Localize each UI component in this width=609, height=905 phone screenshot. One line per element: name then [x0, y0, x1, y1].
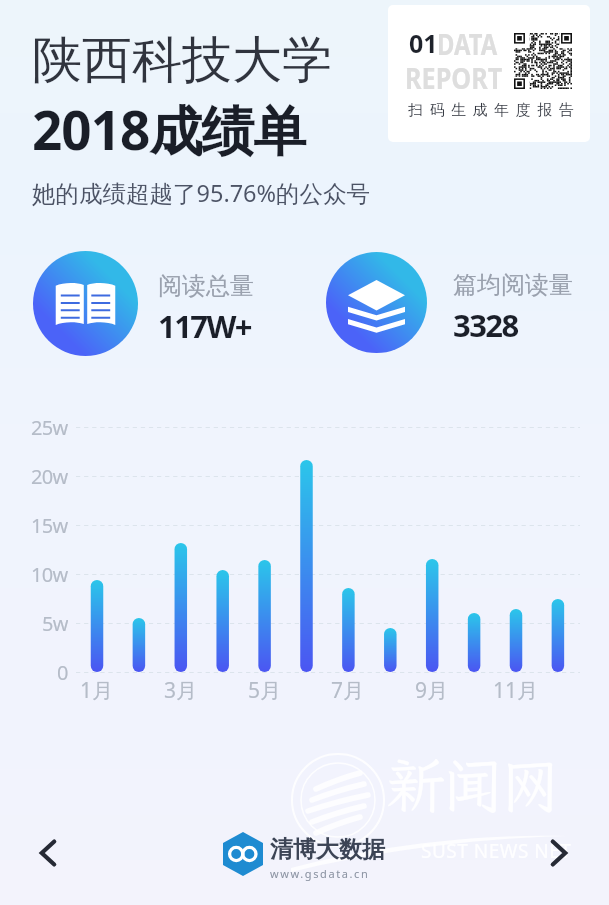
- staticText: 5月: [248, 676, 282, 702]
- staticText: 0: [57, 659, 68, 685]
- staticText: 5w: [42, 610, 68, 636]
- staticText: 扫码生成年度报告: [405, 101, 577, 120]
- staticText: 2018成绩单: [32, 93, 306, 165]
- staticText: 3月: [164, 676, 198, 702]
- button[interactable]: Next page: [538, 832, 580, 874]
- staticText: 陕西科技大学: [32, 29, 332, 92]
- staticText: www.gsdata.cn: [270, 866, 370, 881]
- staticText: 25w: [31, 414, 68, 440]
- button[interactable]: Previous page: [27, 832, 69, 874]
- staticText: 清博大数据: [270, 835, 385, 864]
- staticText: 11月: [493, 676, 539, 702]
- staticText: 篇均阅读量: [453, 270, 573, 300]
- staticText: 10w: [31, 561, 68, 587]
- staticText: 阅读总量: [158, 271, 254, 301]
- staticText: 20w: [31, 463, 68, 489]
- staticText: 她的成绩超越了95.76%的公众号: [32, 177, 371, 209]
- staticText: 新闻网: [386, 745, 557, 824]
- staticText: 01: [409, 26, 438, 60]
- staticText: SUST NEWS NET: [421, 838, 572, 864]
- staticText: DATA: [437, 25, 497, 63]
- staticText: 15w: [31, 512, 68, 538]
- staticText: 1月: [80, 676, 114, 702]
- staticText: 9月: [415, 676, 449, 702]
- button[interactable]: 01: [388, 5, 590, 142]
- staticText: 3328: [453, 304, 518, 346]
- staticText: REPORT: [405, 59, 503, 97]
- staticText: 117W+: [158, 305, 251, 347]
- staticText: 7月: [331, 676, 365, 702]
